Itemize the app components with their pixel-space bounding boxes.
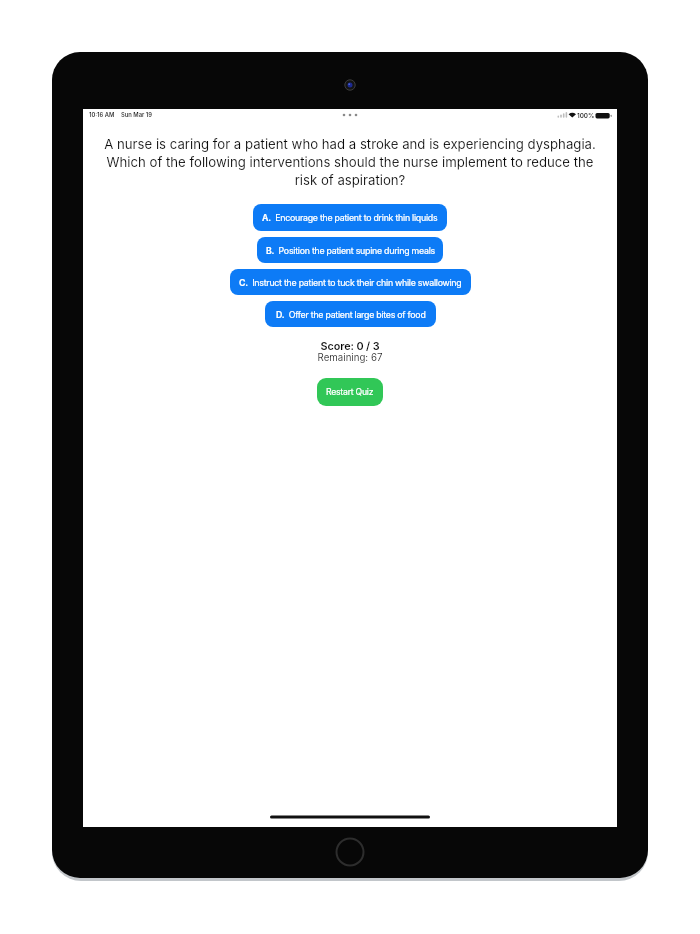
staticText: Remaining: 67 [0,352,700,364]
staticText: Sun Mar 19 [121,111,152,118]
staticText: Restart Quiz [326,387,374,398]
staticText: 10:16 AM [89,111,115,118]
button[interactable]: Restart Quiz [317,378,383,406]
button[interactable]: C. Instruct the patient to tuck their ch… [230,269,471,295]
button[interactable]: A. Encourage the patient to drink thin l… [253,204,447,231]
staticText: Score: 0 / 3 [0,340,700,353]
button[interactable]: D. Offer the patient large bites of food [265,301,436,327]
staticText: D. Offer the patient large bites of food [276,309,426,320]
staticText: 100% [577,112,595,120]
staticText: A. Encourage the patient to drink thin l… [262,212,438,223]
staticText: B. Position the patient supine during me… [266,245,435,256]
staticText: C. Instruct the patient to tuck their ch… [239,277,462,288]
button[interactable]: B. Position the patient supine during me… [257,237,443,263]
staticText: A nurse is caring for a patient who had … [0,136,700,188]
